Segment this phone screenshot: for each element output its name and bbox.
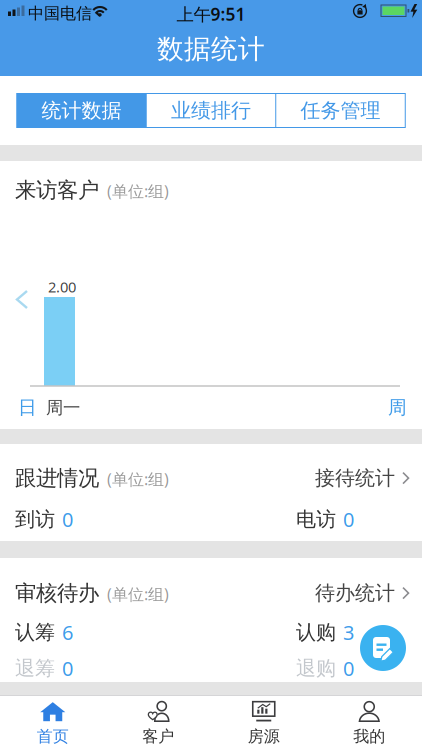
button[interactable]: 统计数据 [17,94,146,127]
button[interactable]: 接待统计 [315,466,410,490]
staticText: 中国电信 [28,3,92,23]
staticText: 周一 [46,397,80,418]
staticText: 待办统计 [315,581,395,605]
staticText: 3 [343,619,354,646]
staticText: 审核待办 [15,580,99,606]
staticText: (单位:组) [107,583,169,605]
staticText: 0 [343,506,354,533]
button[interactable]: 日 [18,396,37,419]
staticText: 首页 [37,727,69,746]
staticText: 退购 [296,656,336,681]
staticText: (单位:组) [107,180,169,202]
button[interactable]: 房源 [211,696,316,749]
staticText: 上午9:51 [176,2,245,25]
button[interactable]: 待办统计 [315,581,410,605]
staticText: (单位:组) [107,468,169,490]
staticText: 0 [343,655,354,682]
staticText: 数据统计 [157,33,265,65]
button[interactable]: 首页 [0,696,105,749]
staticText: 退筹 [15,656,55,681]
button[interactable]: 任务管理 [276,94,405,127]
button[interactable]: 客户 [105,696,211,749]
staticText: 认筹 [15,620,55,645]
staticText: 房源 [248,727,280,746]
staticText: 客户 [142,727,174,746]
staticText: 任务管理 [300,98,380,123]
button[interactable]: 上一周 [16,290,29,309]
staticText: 日 [18,396,37,419]
button[interactable]: 业绩排行 [147,94,275,127]
staticText: 周 [388,396,407,419]
staticText: 跟进情况 [15,465,99,491]
button[interactable]: 我的 [316,696,422,749]
staticText: 0 [62,506,73,533]
staticText: 0 [62,655,73,682]
staticText: 业绩排行 [171,98,251,123]
staticText: 来访客户 [15,177,99,203]
staticText: 2.00 [48,277,76,296]
staticText: 统计数据 [41,98,121,123]
staticText: 电访 [296,507,336,532]
staticText: 6 [62,619,73,646]
staticText: 我的 [353,727,385,746]
staticText: 接待统计 [315,466,395,490]
button[interactable]: 写跟进 [360,625,406,671]
staticText: 到访 [15,507,55,532]
button[interactable]: 周 [388,396,407,419]
staticText: 认购 [296,620,336,645]
